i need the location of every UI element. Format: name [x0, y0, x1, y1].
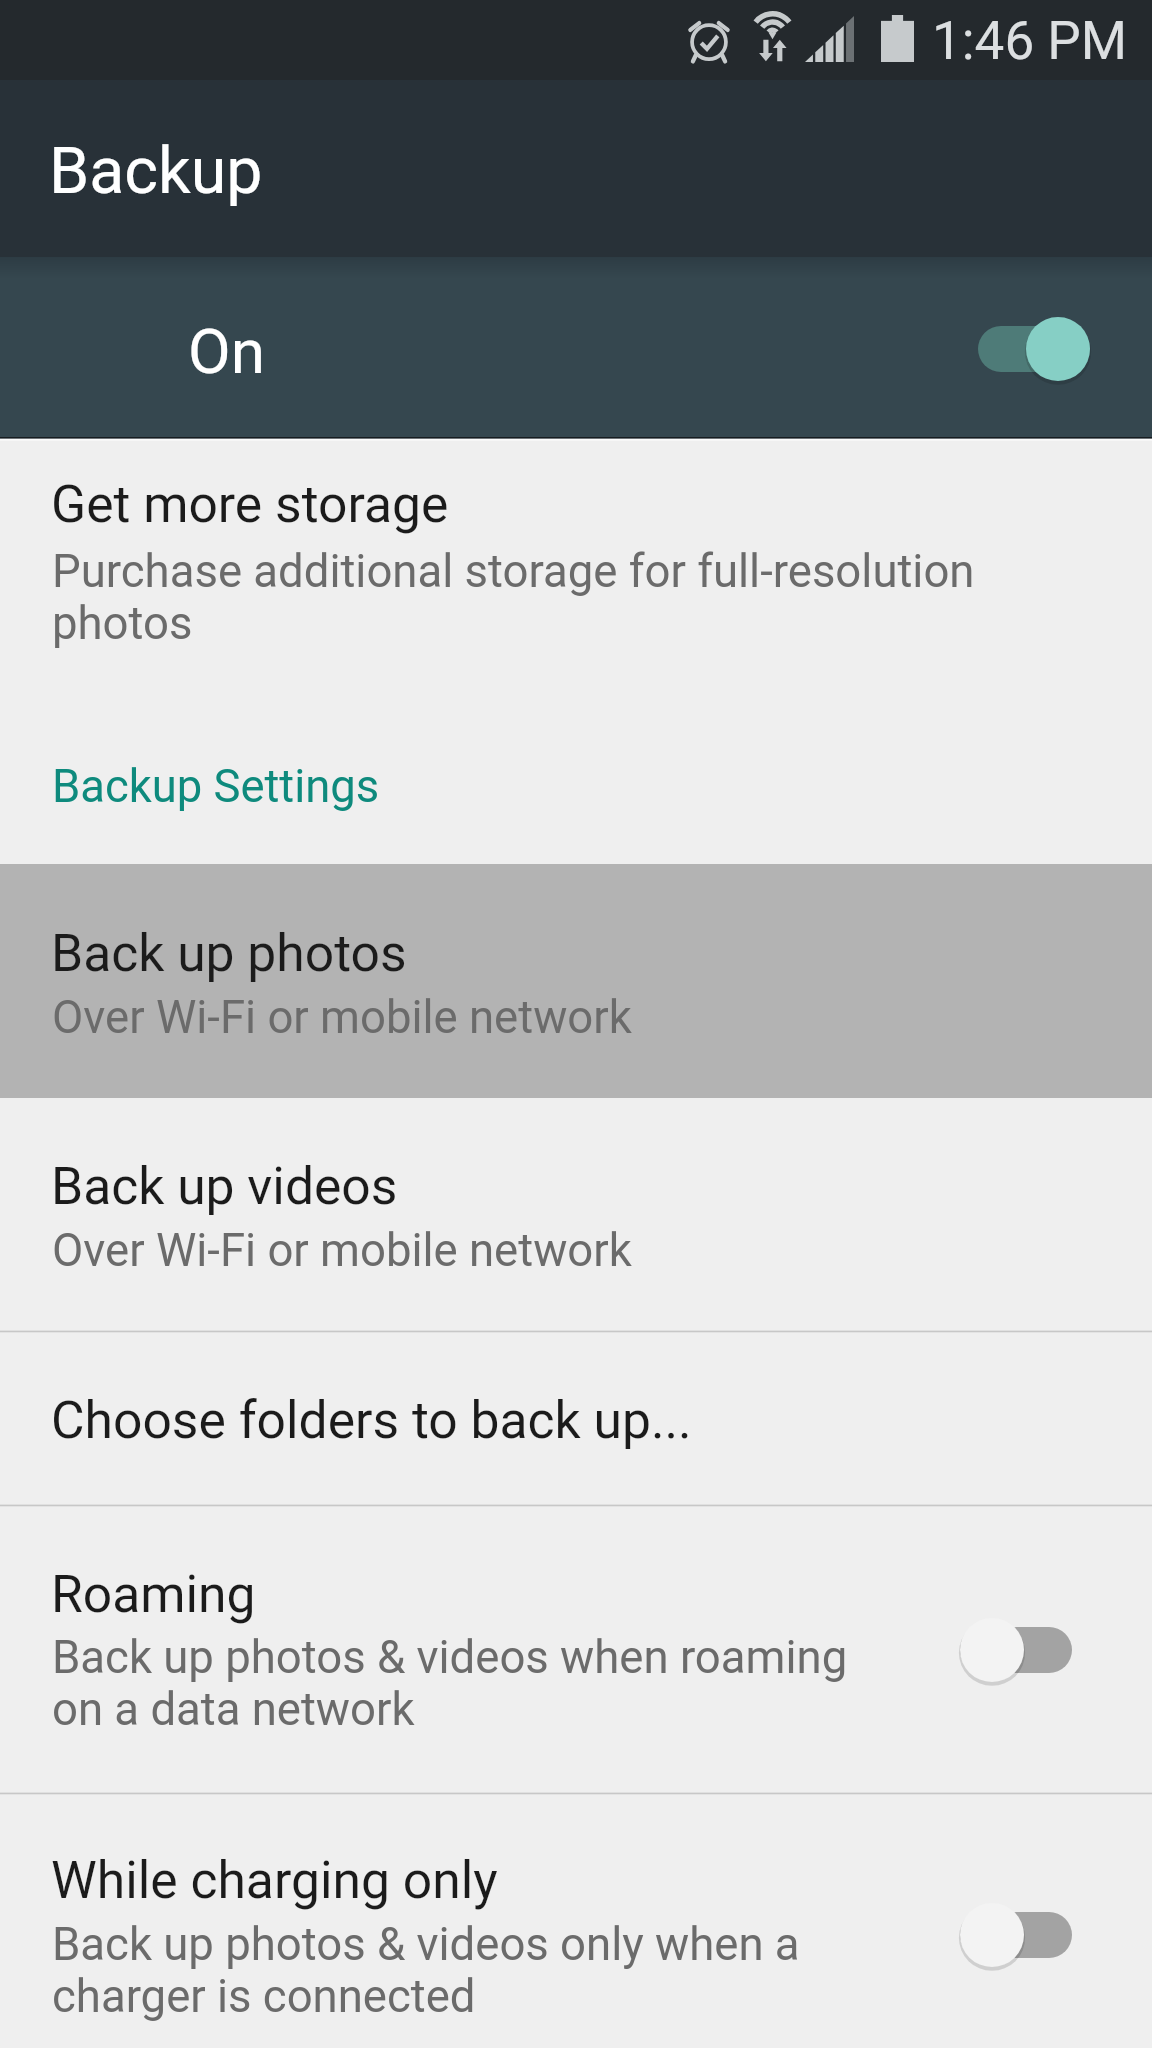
button[interactable]: Backup Settings: [0, 747, 1152, 864]
staticText: Back up photos: [51, 923, 407, 983]
staticText: photos: [52, 597, 193, 650]
staticText: While charging only: [51, 1850, 498, 1910]
staticText: Over Wi-Fi or mobile network: [52, 1224, 632, 1277]
staticText: on a data network: [52, 1683, 415, 1736]
button[interactable]: Backup on/off: [978, 317, 1090, 381]
button[interactable]: Back up videos: [0, 1098, 1152, 1330]
staticText: Backup Settings: [52, 760, 380, 813]
staticText: Choose folders to back up...: [51, 1390, 692, 1450]
button[interactable]: Roaming toggle: [960, 1618, 1072, 1682]
button[interactable]: While charging only: [0, 1795, 1152, 2048]
staticText: On: [188, 315, 265, 388]
button[interactable]: While charging only toggle: [960, 1903, 1072, 1967]
staticText: Purchase additional storage for full-res…: [52, 545, 975, 598]
other: Wi-Fi connected: [749, 12, 796, 63]
button[interactable]: Back up photos: [0, 864, 1152, 1098]
other: Mobile signal: [805, 16, 854, 62]
button[interactable]: Get more storage: [0, 441, 1152, 747]
staticText: charger is connected: [52, 1970, 476, 2023]
other: Alarm set: [687, 14, 731, 62]
staticText: 1:46 PM: [932, 10, 1128, 72]
staticText: Back up photos & videos only when a: [52, 1918, 800, 1971]
button[interactable]: On: [0, 257, 1152, 437]
button[interactable]: Roaming: [0, 1507, 1152, 1792]
other: Battery full: [881, 15, 914, 62]
staticText: Back up videos: [51, 1156, 398, 1216]
staticText: Over Wi-Fi or mobile network: [52, 991, 632, 1044]
staticText: Backup: [49, 133, 263, 209]
staticText: Roaming: [51, 1564, 256, 1624]
staticText: Back up photos & videos when roaming: [52, 1631, 848, 1684]
button[interactable]: Choose folders to back up...: [0, 1333, 1152, 1504]
staticText: Get more storage: [51, 474, 449, 534]
